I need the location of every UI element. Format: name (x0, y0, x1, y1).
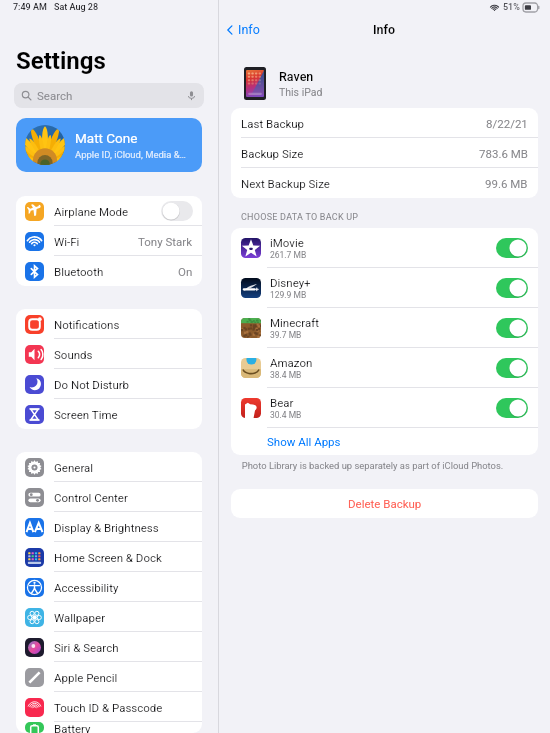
staticText: Apple Pencil (54, 671, 118, 684)
staticText: 7:49 AM (13, 2, 47, 13)
button[interactable]: On (496, 238, 528, 258)
staticText: Sounds (54, 348, 93, 361)
button[interactable]: Siri & Search (16, 632, 202, 662)
button[interactable]: Wallpaper (16, 602, 202, 632)
button[interactable]: Home Screen & Dock (16, 542, 202, 572)
staticText: Touch ID & Passcode (54, 701, 163, 714)
staticText: Photo Library is backed up separately as… (231, 460, 514, 471)
staticText: Wallpaper (54, 611, 106, 624)
button[interactable]: Amazon (231, 348, 538, 388)
staticText: Battery (54, 722, 91, 733)
staticText: Screen Time (54, 408, 118, 421)
staticText: Delete Backup (348, 497, 422, 510)
button[interactable]: General (16, 452, 202, 482)
button[interactable]: Accessibility (16, 572, 202, 602)
staticText: 129.9 MB (270, 290, 307, 300)
button[interactable]: Disney+ (231, 268, 538, 308)
staticText: Control Center (54, 491, 128, 504)
button[interactable]: Sounds (16, 339, 202, 369)
staticText: 261.7 MB (270, 250, 307, 260)
button[interactable]: On (496, 398, 528, 418)
staticText: Amazon (270, 356, 313, 369)
staticText: 38.4 MB (270, 370, 302, 380)
staticText: Airplane Mode (54, 205, 129, 218)
staticText: Siri & Search (54, 641, 119, 654)
staticText: Wi-Fi (54, 235, 80, 248)
button[interactable]: iMovie (231, 228, 538, 268)
staticText: Accessibility (54, 581, 119, 594)
staticText: Last Backup (241, 117, 305, 130)
staticText: Info (373, 22, 396, 37)
button[interactable]: Notifications (16, 309, 202, 339)
button[interactable]: Off (161, 201, 193, 221)
button[interactable]: Battery (16, 722, 202, 733)
staticText: Notifications (54, 318, 120, 331)
button[interactable]: On (496, 278, 528, 298)
staticText: 30.4 MB (270, 410, 302, 420)
button[interactable]: Next Backup Size (231, 168, 538, 198)
button[interactable]: Do Not Disturb (16, 369, 202, 399)
button[interactable]: Info (224, 22, 260, 37)
staticText: 99.6 MB (485, 177, 528, 190)
staticText: Info (238, 22, 260, 37)
staticText: Apple ID, iCloud, Media &… (75, 149, 186, 160)
button[interactable]: Backup Size (231, 138, 538, 168)
button[interactable]: Bluetooth (16, 256, 202, 286)
staticText: Settings (16, 47, 106, 75)
button[interactable]: Control Center (16, 482, 202, 512)
staticText: This iPad (279, 86, 323, 98)
button[interactable]: Search (14, 83, 204, 108)
button[interactable]: Delete Backup (231, 489, 538, 518)
staticText: Display & Brightness (54, 521, 159, 534)
staticText: Do Not Disturb (54, 378, 130, 391)
staticText: Backup Size (241, 147, 304, 160)
button[interactable]: On (496, 318, 528, 338)
staticText: On (178, 265, 193, 278)
button[interactable]: Touch ID & Passcode (16, 692, 202, 722)
staticText: General (54, 461, 94, 474)
button[interactable]: Wi-Fi (16, 226, 202, 256)
button[interactable]: Display & Brightness (16, 512, 202, 542)
staticText: 8/22/21 (486, 117, 528, 130)
staticText: Home Screen & Dock (54, 551, 162, 564)
button[interactable]: Screen Time (16, 399, 202, 429)
button[interactable]: On (496, 358, 528, 378)
staticText: Tony Stark (138, 235, 193, 248)
staticText: Disney+ (270, 276, 311, 289)
staticText: Bear (270, 396, 294, 409)
button[interactable]: Bear (231, 388, 538, 428)
staticText: Minecraft (270, 316, 319, 329)
staticText: 51% (503, 2, 520, 13)
staticText: Sat Aug 28 (54, 2, 99, 13)
staticText: Bluetooth (54, 265, 104, 278)
staticText: Matt Cone (75, 130, 138, 146)
staticText: Raven (279, 69, 314, 84)
button[interactable]: Matt Cone (16, 118, 202, 172)
button[interactable]: Show All Apps (231, 428, 538, 455)
button[interactable]: Minecraft (231, 308, 538, 348)
staticText: CHOOSE DATA TO BACK UP (241, 212, 359, 223)
staticText: 39.7 MB (270, 330, 302, 340)
staticText: Show All Apps (267, 435, 341, 448)
staticText: iMovie (270, 236, 304, 249)
button[interactable]: Apple Pencil (16, 662, 202, 692)
staticText: Search (37, 89, 73, 102)
staticText: Next Backup Size (241, 177, 330, 190)
button[interactable]: Last Backup (231, 108, 538, 138)
button[interactable]: Airplane Mode (16, 196, 202, 226)
staticText: 783.6 MB (479, 147, 528, 160)
